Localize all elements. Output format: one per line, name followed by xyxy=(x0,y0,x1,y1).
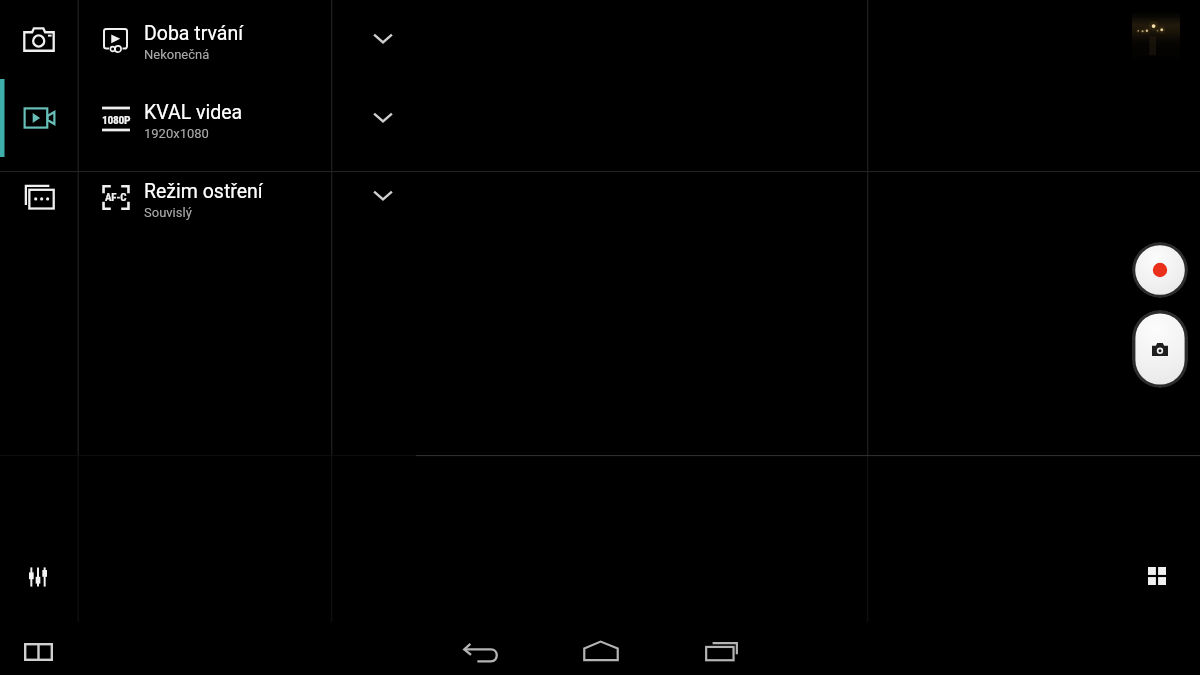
button[interactable]: Last captured photo xyxy=(1132,12,1180,59)
button[interactable]: Doba trvání xyxy=(78,0,331,79)
button[interactable]: Take photo xyxy=(1132,310,1188,388)
staticText: Souvislý xyxy=(144,205,192,220)
button[interactable]: Expand xyxy=(355,96,411,140)
button[interactable]: Video mode xyxy=(0,78,78,157)
button[interactable]: Photo mode xyxy=(0,0,78,78)
button[interactable]: Back xyxy=(452,636,508,668)
staticText: Režim ostření xyxy=(144,180,263,203)
button[interactable]: Expand xyxy=(355,174,411,218)
staticText: 1080P xyxy=(102,113,131,126)
staticText: 1920x1080 xyxy=(144,126,209,141)
button[interactable]: Record video xyxy=(1132,242,1188,298)
button[interactable]: Home xyxy=(573,635,629,667)
staticText: KVAL videa xyxy=(144,101,243,124)
staticText: Nekonečná xyxy=(144,47,210,62)
button[interactable]: Grid lines xyxy=(1133,552,1181,600)
staticText: AF-C xyxy=(105,191,127,204)
button[interactable]: 1080P xyxy=(78,79,331,158)
button[interactable]: Recent apps xyxy=(693,635,749,667)
staticText: Doba trvání xyxy=(144,22,243,45)
button[interactable]: Split screen xyxy=(16,638,60,666)
button[interactable]: Settings xyxy=(14,553,62,601)
button[interactable]: AF-C xyxy=(78,158,331,237)
button[interactable]: More modes xyxy=(0,157,78,236)
button[interactable]: Expand xyxy=(355,17,411,61)
